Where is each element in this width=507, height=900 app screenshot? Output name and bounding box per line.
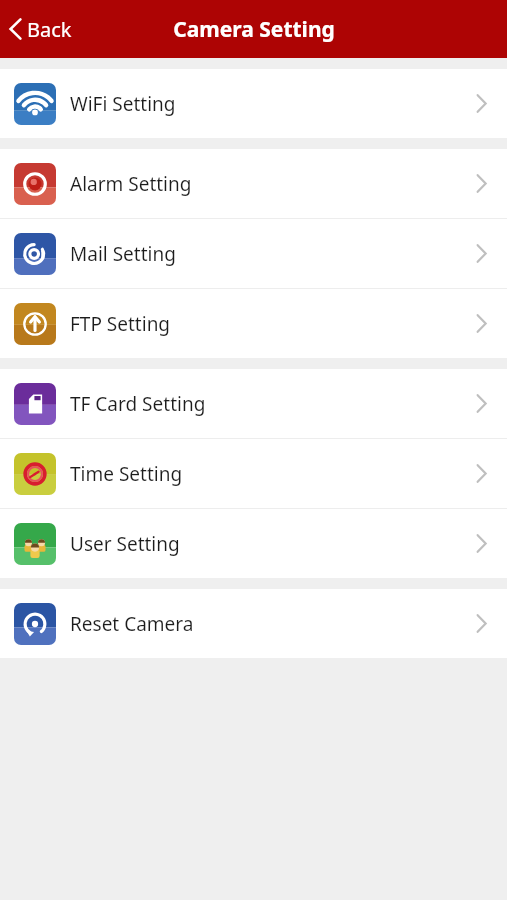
- staticText: FTP Setting: [70, 311, 171, 337]
- button[interactable]: TF Card Setting: [0, 369, 507, 438]
- button[interactable]: User Setting: [0, 509, 507, 578]
- button[interactable]: Back: [0, 0, 84, 58]
- staticText: Mail Setting: [70, 241, 176, 267]
- staticText: Alarm Setting: [70, 171, 192, 197]
- staticText: Time Setting: [70, 461, 183, 487]
- button[interactable]: Mail Setting: [0, 219, 507, 288]
- staticText: TF Card Setting: [70, 391, 206, 417]
- staticText: Camera Setting: [173, 15, 335, 44]
- button[interactable]: WiFi Setting: [0, 69, 507, 138]
- staticText: Back: [27, 16, 72, 43]
- staticText: User Setting: [70, 531, 180, 557]
- button[interactable]: Alarm Setting: [0, 149, 507, 218]
- staticText: WiFi Setting: [70, 91, 176, 117]
- staticText: Reset Camera: [70, 611, 194, 637]
- button[interactable]: Time Setting: [0, 439, 507, 508]
- button[interactable]: FTP Setting: [0, 289, 507, 358]
- button[interactable]: Reset Camera: [0, 589, 507, 658]
